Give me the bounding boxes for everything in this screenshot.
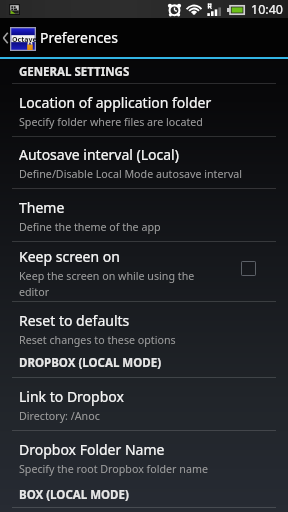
button[interactable]: Location of application folder bbox=[0, 84, 288, 136]
staticText: Define the theme of the app bbox=[19, 220, 161, 235]
staticText: Theme bbox=[19, 198, 65, 217]
staticText: Reset to defaults bbox=[19, 311, 130, 330]
staticText: Autosave interval (Local) bbox=[19, 145, 179, 164]
staticText: BOX (LOCAL MODE) bbox=[19, 487, 129, 503]
button[interactable]: Keep screen on bbox=[0, 242, 288, 301]
staticText: Dropbox Folder Name bbox=[19, 440, 165, 459]
staticText: Specify the root Dropbox folder name bbox=[19, 462, 208, 477]
staticText: Define/Disable Local Mode autosave inter… bbox=[19, 167, 243, 182]
button[interactable]: Dropbox Folder Name bbox=[0, 431, 288, 484]
staticText: DROPBOX (LOCAL MODE) bbox=[19, 355, 162, 371]
staticText: GENERAL SETTINGS bbox=[19, 64, 130, 80]
staticText: 10:40 bbox=[251, 1, 283, 18]
staticText: Keep the screen on while using the edito… bbox=[19, 269, 195, 299]
button[interactable]: Reset to defaults bbox=[0, 302, 288, 355]
button[interactable]: Link to Dropbox bbox=[0, 378, 288, 430]
staticText: Keep screen on bbox=[19, 247, 120, 266]
staticText: Directory: /Anoc bbox=[19, 409, 100, 424]
button[interactable]: Navigate up bbox=[0, 18, 288, 57]
staticText: Preferences bbox=[40, 28, 118, 47]
staticText: Reset changes to these options bbox=[19, 333, 176, 348]
button[interactable]: Keep screen on checkbox bbox=[241, 261, 256, 276]
button[interactable]: Theme bbox=[0, 189, 288, 241]
staticText: Octave bbox=[12, 35, 37, 45]
staticText: Location of application folder bbox=[19, 93, 212, 112]
staticText: Link to Dropbox bbox=[19, 387, 124, 406]
button[interactable]: Autosave interval (Local) bbox=[0, 137, 288, 188]
staticText: Specify folder where files are located bbox=[19, 115, 203, 130]
